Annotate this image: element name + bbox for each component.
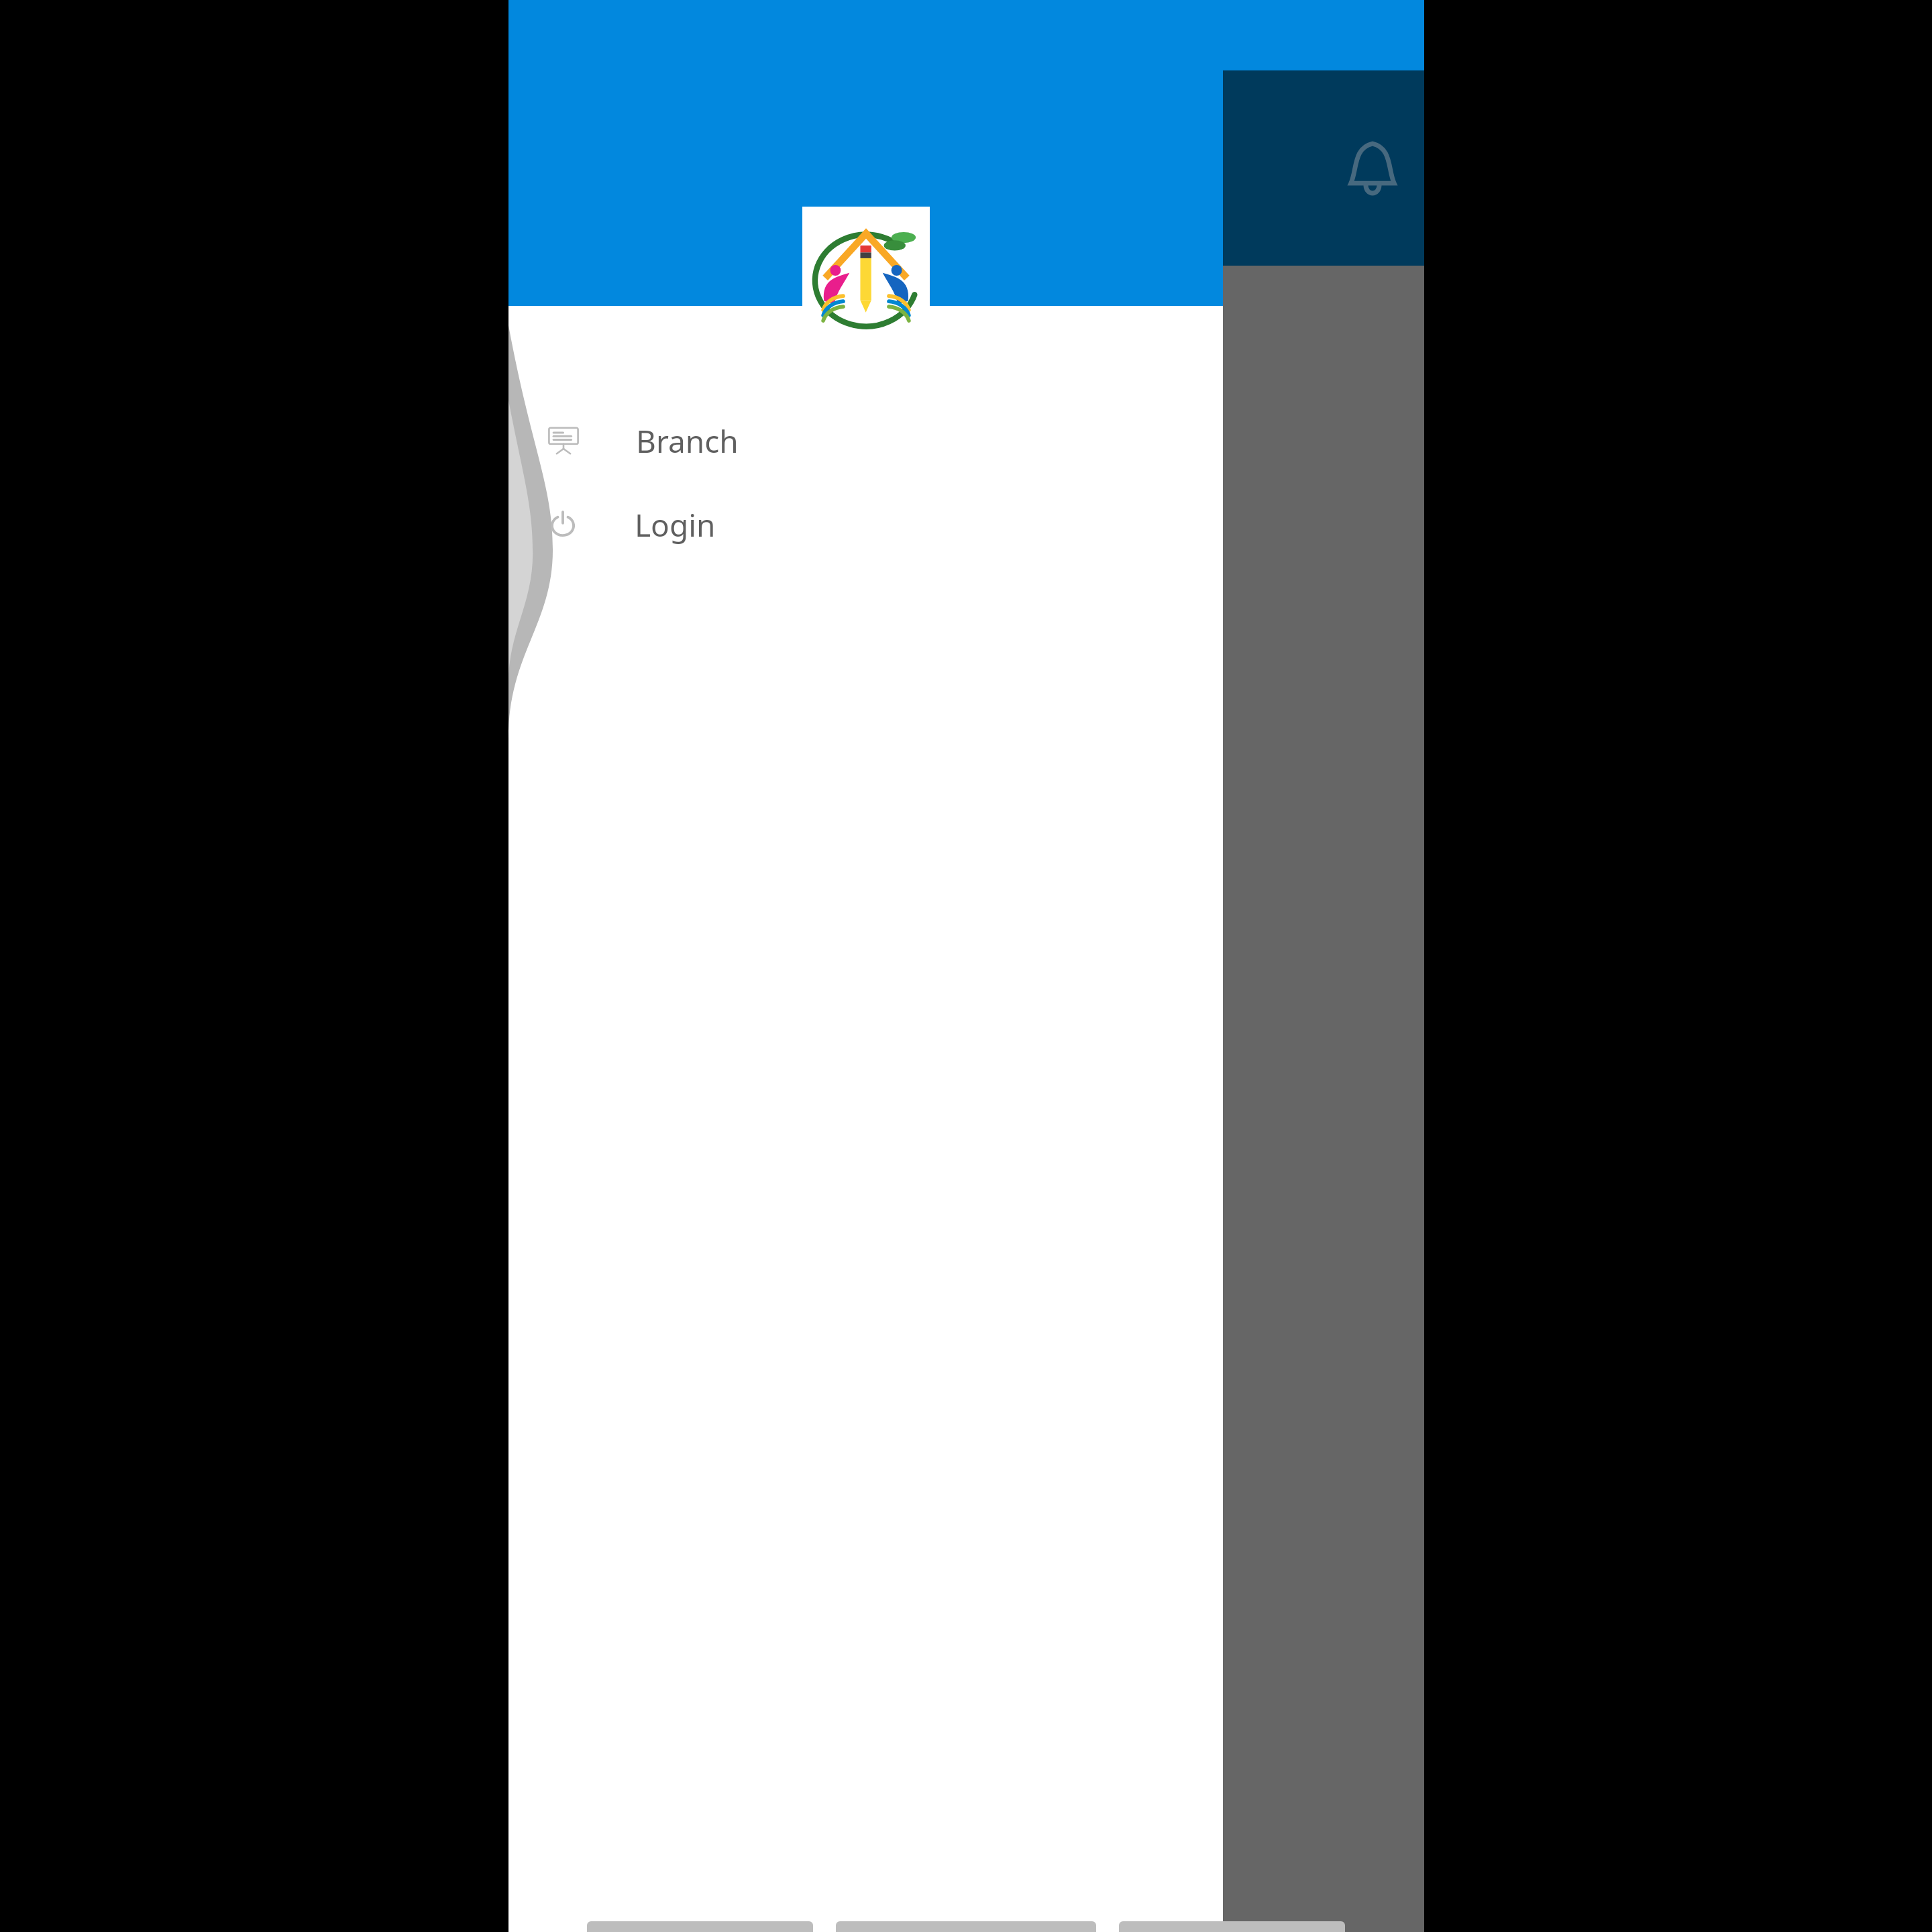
button[interactable]: System navigation xyxy=(1119,1921,1345,1932)
button[interactable]: System navigation xyxy=(587,1921,813,1932)
button[interactable]: System navigation xyxy=(836,1921,1096,1932)
button[interactable]: Notifications xyxy=(1332,127,1413,209)
button[interactable]: Login xyxy=(508,499,1223,550)
button[interactable]: Branch xyxy=(508,414,1223,468)
staticText: Branch xyxy=(636,420,739,462)
staticText: Login xyxy=(635,504,716,546)
